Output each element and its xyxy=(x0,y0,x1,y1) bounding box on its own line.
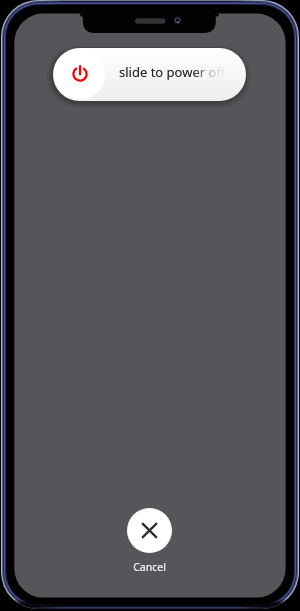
staticText: slide to power off xyxy=(119,63,226,81)
staticText: Cancel xyxy=(133,560,166,574)
button[interactable]: slide to power off xyxy=(53,48,246,101)
button[interactable]: Cancel xyxy=(127,508,172,574)
